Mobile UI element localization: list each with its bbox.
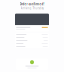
staticText: Order confirmed! <box>19 2 44 6</box>
staticText: Arriving Thursday <box>20 6 43 10</box>
